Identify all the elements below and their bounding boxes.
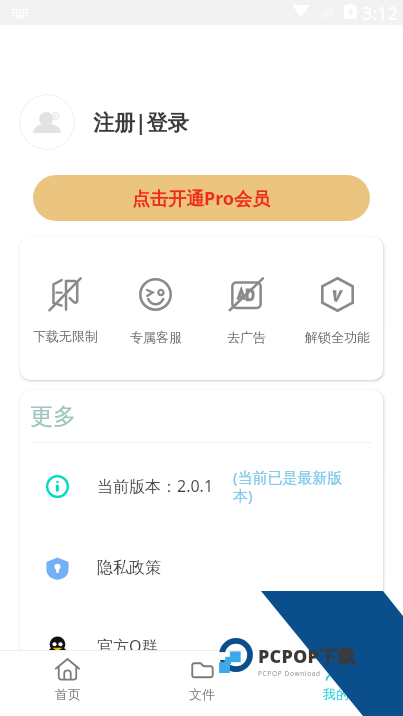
staticText: 下载无限制 [33,328,98,344]
staticText: 3:12 [362,1,398,26]
staticText: 专属客服 [130,329,182,345]
staticText: 解锁全功能 [305,329,370,345]
staticText: 首页 [55,686,81,702]
button[interactable]: 去广告 [201,237,292,380]
staticText: 当前版本：2.0.1 [97,475,214,497]
button[interactable]: 解锁全功能 [292,237,383,380]
button[interactable]: 我的 [269,651,403,716]
button[interactable]: 注册|登录 [0,94,403,150]
button[interactable]: 下载无限制 [20,237,110,380]
staticText: 官方Q群 [97,635,158,657]
staticText: 注册|登录 [93,108,189,137]
button[interactable]: 当前版本：2.0.1 [20,443,383,529]
button[interactable]: 点击开通Pro会员 [33,175,370,221]
staticText: 点击开通Pro会员 [132,186,271,211]
other: 专属客服 [138,277,173,312]
button[interactable]: 官方Q群 [20,607,383,685]
button[interactable]: 专属客服 [110,237,201,380]
staticText: (当前已是最新版本) [233,467,352,505]
button[interactable]: 首页 [0,651,135,716]
other: 去广告 [229,277,264,312]
staticText: PCPOP Download [258,669,321,678]
button[interactable]: 文件 [135,651,269,716]
other: 解锁全功能 [320,277,355,312]
staticText: 去广告 [227,329,266,345]
staticText: 我的 [323,686,349,702]
staticText: PCPOP下载 [258,644,356,669]
other: 下载无限制 [48,277,82,311]
button[interactable]: 隐私政策 [20,529,383,607]
staticText: 隐私政策 [97,558,161,578]
staticText: 文件 [189,686,215,702]
staticText: 更多 [30,402,76,431]
